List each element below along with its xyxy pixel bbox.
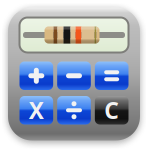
button[interactable]: Clear — [95, 96, 128, 124]
button[interactable]: Multiply — [19, 96, 53, 124]
button[interactable]: Add — [19, 61, 53, 90]
button[interactable]: Equals — [95, 61, 128, 90]
button[interactable]: Divide — [57, 96, 91, 124]
button[interactable]: Subtract — [57, 61, 91, 90]
staticText: X — [29, 95, 44, 125]
staticText: C — [104, 95, 119, 125]
